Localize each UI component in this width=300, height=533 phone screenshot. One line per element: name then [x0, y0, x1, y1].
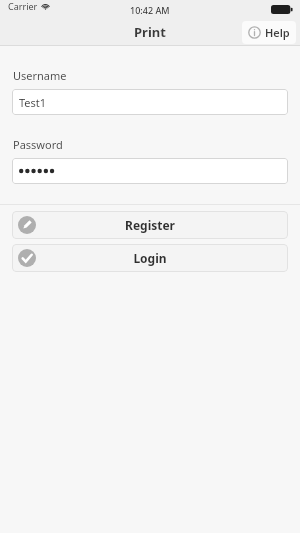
staticText: Test1: [19, 95, 47, 110]
button[interactable]: Register: [12, 211, 288, 239]
button[interactable]: Help: [242, 21, 296, 44]
other: Register: [18, 216, 36, 234]
staticText: Carrier: [8, 0, 38, 12]
other: Login: [18, 249, 36, 267]
button[interactable]: Test1: [12, 89, 288, 115]
staticText: Help: [265, 25, 290, 40]
staticText: Register: [125, 217, 175, 233]
staticText: Username: [13, 68, 67, 83]
button[interactable]: [12, 158, 288, 184]
staticText: Login: [133, 250, 167, 266]
staticText: Print: [134, 23, 166, 41]
staticText: Password: [13, 137, 63, 152]
button[interactable]: Login: [12, 244, 288, 272]
staticText: 10:42 AM: [130, 4, 170, 16]
